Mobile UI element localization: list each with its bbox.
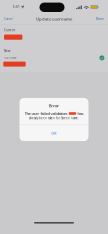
staticText: Cancel [4,17,13,21]
staticText: OK [51,130,57,136]
staticText: 5:01 [13,5,20,9]
staticText: Current [4,28,15,32]
staticText: New [4,49,10,53]
staticText: Update username [36,16,72,22]
button[interactable]: Cancel [0,14,17,24]
staticText: Done [96,17,104,21]
staticText: already been taken for Screen name. [29,116,79,120]
staticText: has [77,111,83,116]
staticText: Username [4,56,17,60]
button[interactable]: Done [92,14,108,24]
staticText: The user failed validation: [25,111,68,116]
button[interactable]: OK [19,125,88,141]
staticText: Error [49,103,59,108]
